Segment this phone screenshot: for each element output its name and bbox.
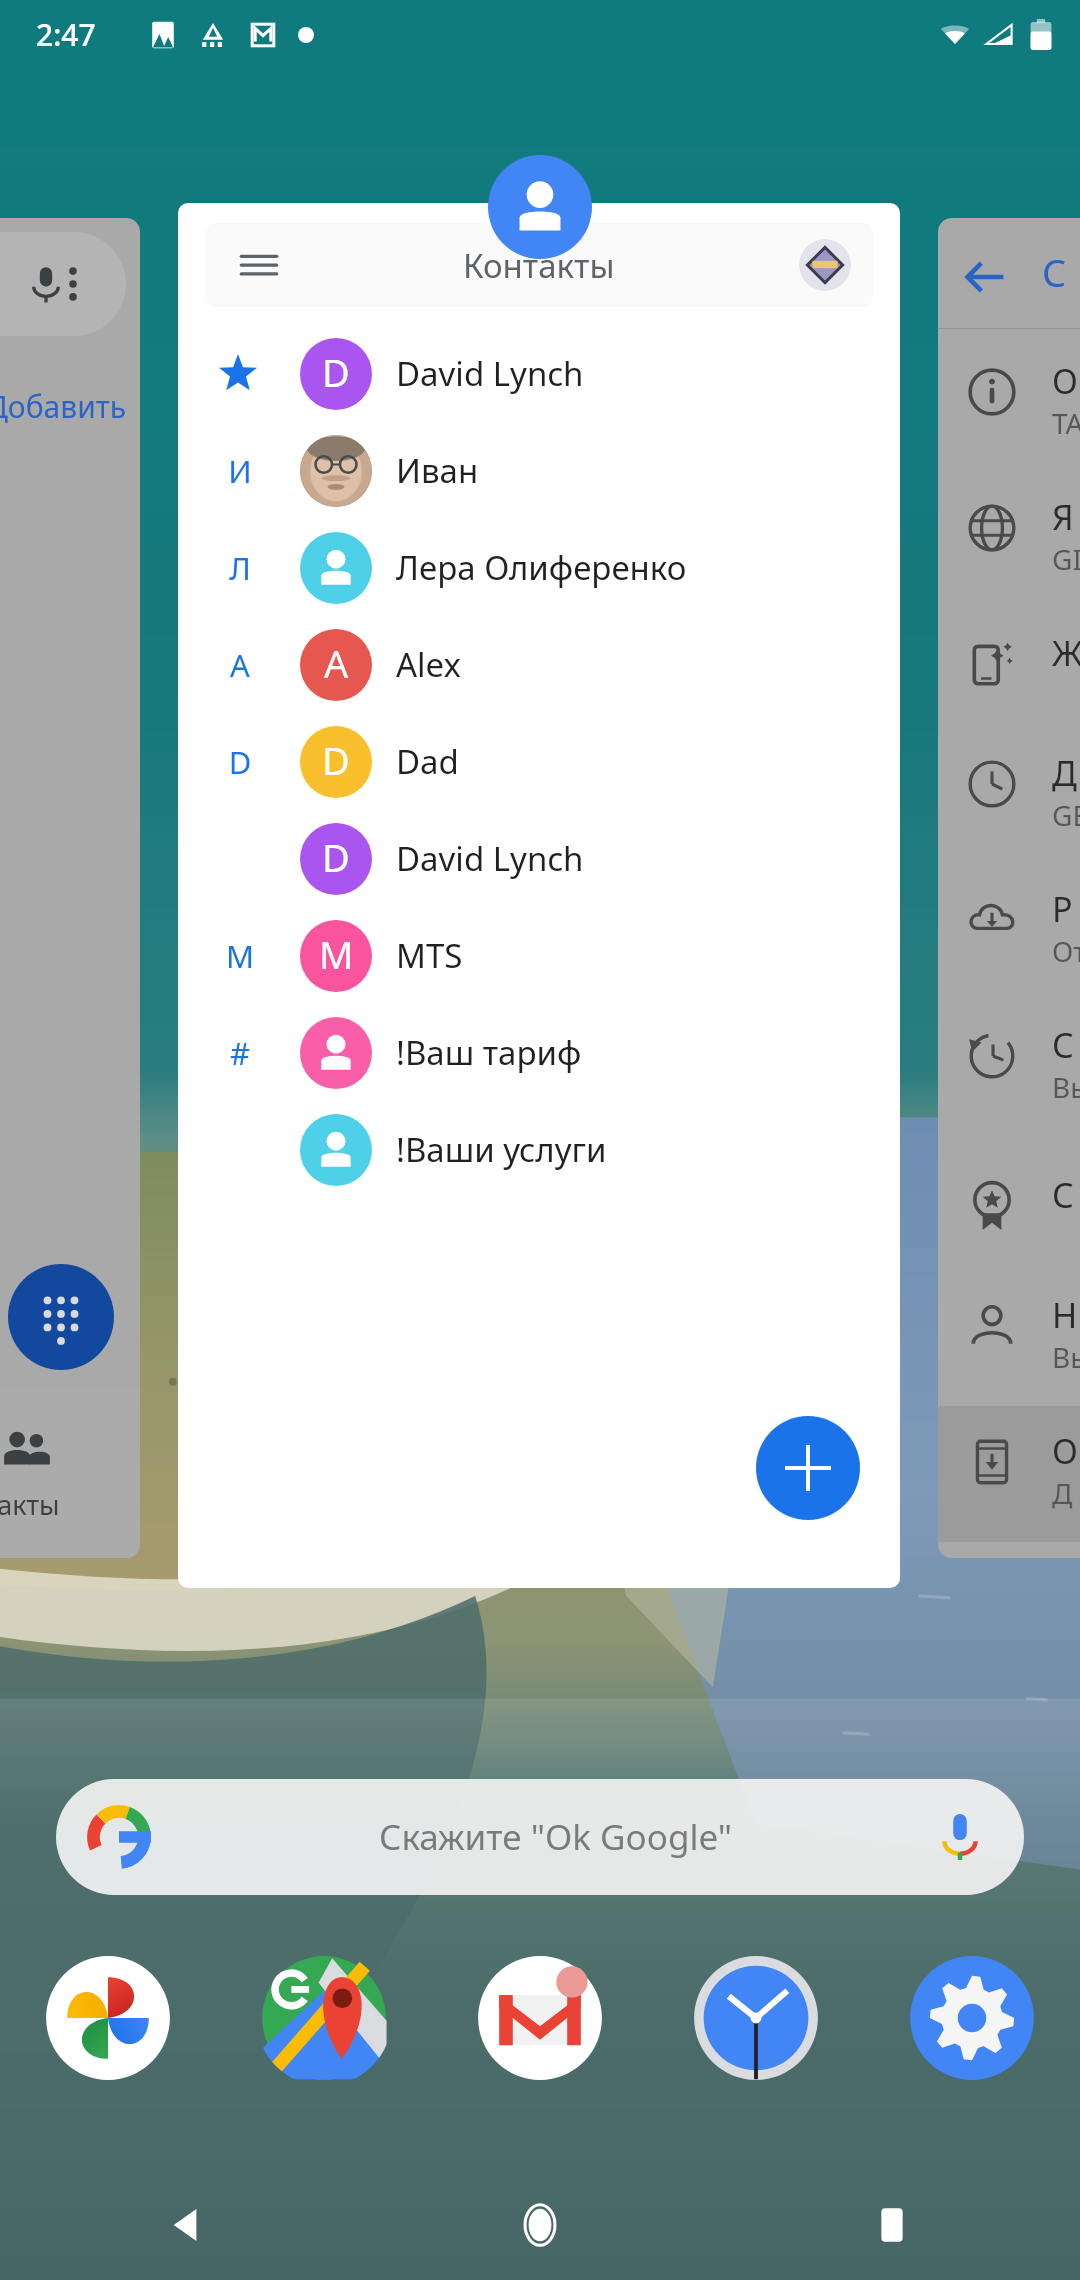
button[interactable]: С: [938, 1000, 1080, 1150]
staticText: О: [1052, 1428, 1078, 1474]
button[interactable]: !Ваши услуги: [178, 1101, 900, 1198]
button[interactable]: D: [178, 325, 900, 422]
button[interactable]: Home: [502, 2187, 578, 2263]
staticText: Вы: [1052, 1338, 1080, 1376]
button[interactable]: Back: [150, 2187, 226, 2263]
button[interactable]: Ж: [938, 608, 1080, 728]
button[interactable]: Profile: [488, 155, 592, 259]
staticText: !Ваши услуги: [396, 1127, 607, 1172]
button[interactable]: Settings: [904, 1950, 1040, 2086]
staticText: MTS: [396, 933, 463, 978]
staticText: Скажите "Ok Google": [379, 1813, 733, 1861]
button[interactable]: Maps: [256, 1950, 392, 2086]
staticText: С: [1052, 1022, 1074, 1068]
staticText: GE: [1052, 796, 1080, 834]
staticText: ТА: [1052, 404, 1080, 442]
staticText: 2:47: [36, 14, 96, 55]
staticText: C: [1042, 246, 1067, 298]
staticText: Лера Олиференко: [396, 545, 687, 590]
other: Open navigation menu: [237, 243, 281, 287]
button[interactable]: Dialpad: [8, 1264, 114, 1370]
button[interactable]: Л: [178, 519, 900, 616]
button[interactable]: A: [178, 616, 900, 713]
staticText: От: [1052, 932, 1080, 970]
button[interactable]: Я: [938, 472, 1080, 608]
staticText: #: [218, 1032, 262, 1074]
staticText: Иван: [396, 448, 479, 493]
staticText: Н: [1052, 1292, 1078, 1338]
staticText: Р: [1052, 886, 1073, 932]
staticText: Л: [218, 547, 262, 589]
staticText: D: [322, 346, 350, 398]
button[interactable]: Recent apps: [854, 2187, 930, 2263]
button[interactable]: О: [938, 336, 1080, 472]
button[interactable]: Р: [938, 864, 1080, 1000]
staticText: David Lynch: [396, 836, 584, 881]
staticText: D: [322, 831, 350, 883]
staticText: Alex: [396, 642, 462, 687]
button[interactable]: Add contact: [756, 1416, 860, 1520]
button[interactable]: И: [178, 422, 900, 519]
button[interactable]: D: [178, 713, 900, 810]
staticText: Вы: [1052, 1068, 1080, 1106]
button[interactable]: M: [178, 907, 900, 1004]
button[interactable]: D: [178, 810, 900, 907]
button[interactable]: Gmail: [472, 1950, 608, 2086]
button[interactable]: С: [938, 1150, 1080, 1270]
staticText: GI: [1052, 540, 1080, 578]
staticText: D: [322, 734, 350, 786]
staticText: И: [218, 450, 262, 492]
staticText: Контакты: [463, 243, 615, 288]
button[interactable]: Н: [938, 1270, 1080, 1406]
staticText: С: [1052, 1172, 1074, 1218]
staticText: Д: [1052, 750, 1077, 796]
staticText: David Lynch: [396, 351, 584, 396]
staticText: Я: [1052, 494, 1074, 540]
button[interactable]: Д: [938, 728, 1080, 864]
staticText: A: [218, 644, 262, 686]
staticText: !Ваш тариф: [396, 1030, 582, 1075]
button[interactable]: Скажите "Ok Google": [56, 1779, 1024, 1895]
button[interactable]: О: [938, 1406, 1080, 1542]
staticText: Добавить: [0, 386, 127, 427]
staticText: A: [324, 637, 349, 689]
staticText: Д: [1052, 1474, 1073, 1512]
staticText: Dad: [396, 739, 459, 784]
staticText: M: [218, 935, 262, 977]
button[interactable]: Clock: [688, 1950, 824, 2086]
button[interactable]: Open navigation menu: [205, 223, 873, 307]
staticText: О: [1052, 358, 1078, 404]
button[interactable]: Account: [799, 239, 851, 291]
button[interactable]: Photos: [40, 1950, 176, 2086]
other: Voice search: [934, 1811, 986, 1863]
staticText: нтакты: [0, 1486, 60, 1523]
button[interactable]: #: [178, 1004, 900, 1101]
staticText: M: [319, 928, 354, 980]
staticText: D: [218, 741, 262, 783]
staticText: Ж: [1052, 630, 1080, 676]
